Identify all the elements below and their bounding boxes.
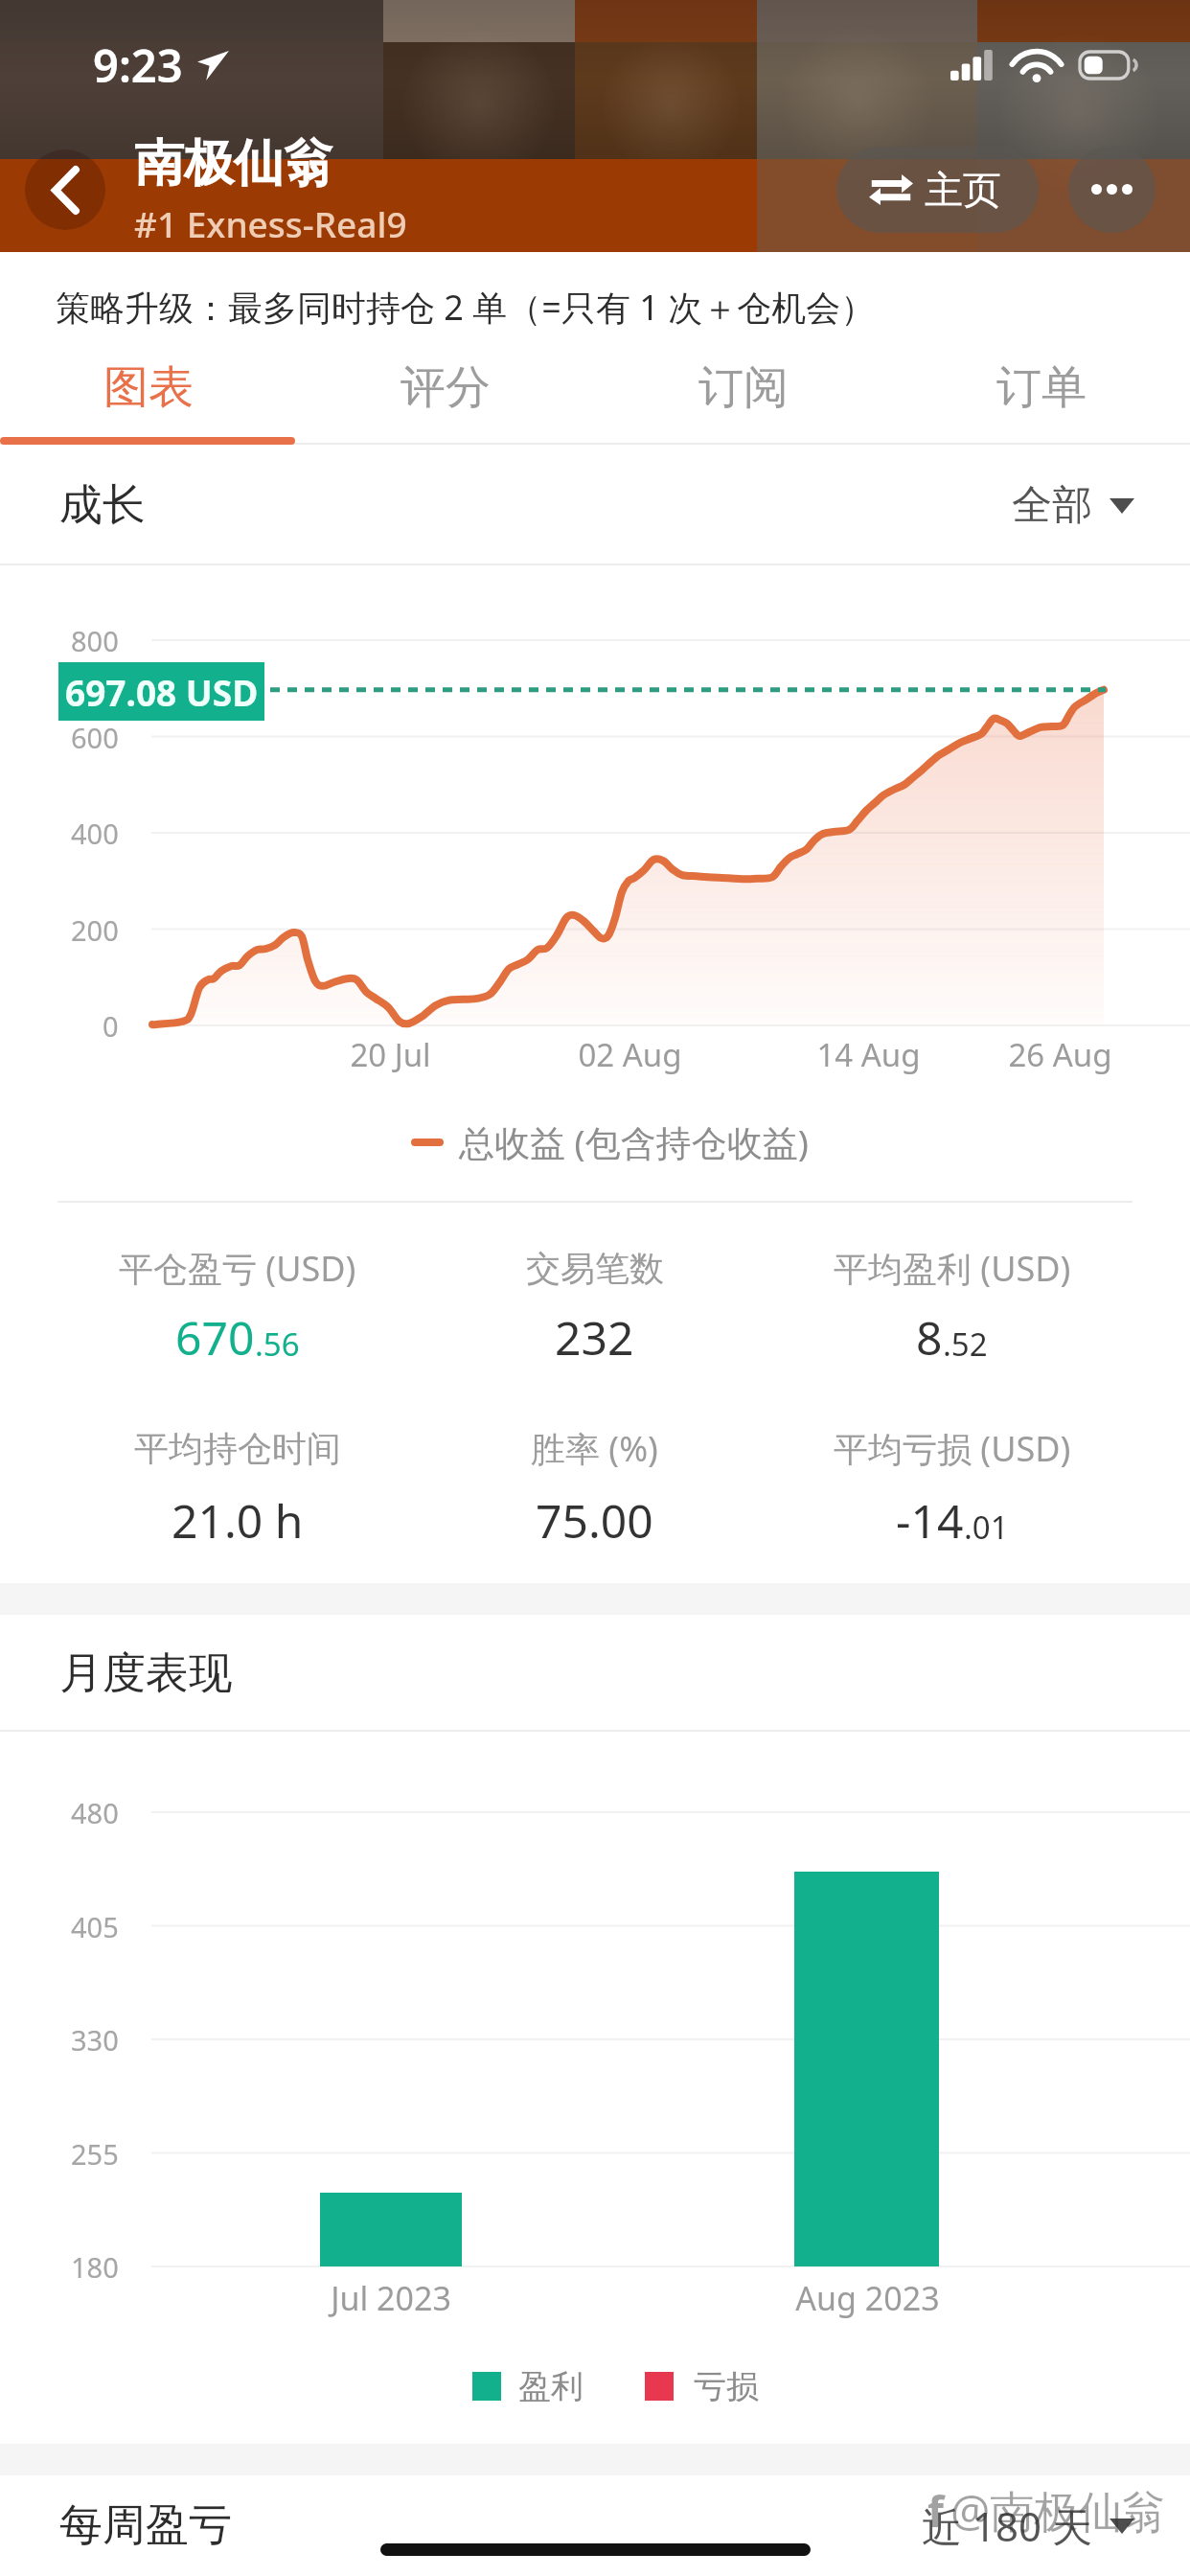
staticText: 平仓盈亏 (USD) bbox=[119, 1245, 356, 1292]
button[interactable]: 图表 bbox=[0, 337, 297, 437]
staticText: 800 bbox=[71, 622, 119, 659]
staticText: 成长 bbox=[59, 478, 146, 533]
staticText: 亏损 bbox=[694, 2366, 759, 2407]
staticText: 400 bbox=[71, 815, 119, 852]
staticText: 每周盈亏 bbox=[59, 2498, 232, 2553]
button[interactable]: 订单 bbox=[892, 337, 1190, 437]
staticText: 180 bbox=[71, 2248, 119, 2286]
staticText: -14 bbox=[896, 1489, 964, 1552]
staticText: 330 bbox=[71, 2021, 119, 2058]
staticText: 近 180 天 bbox=[922, 2498, 1092, 2553]
staticText: .01 bbox=[964, 1506, 1009, 1549]
staticText: 21.0 h bbox=[172, 1489, 304, 1552]
button[interactable]: 全部 bbox=[1012, 465, 1134, 546]
staticText: 评分 bbox=[400, 359, 491, 416]
staticText: 全部 bbox=[1012, 480, 1092, 531]
staticText: 平均盈利 (USD) bbox=[834, 1245, 1071, 1292]
staticText: 胜率 (%) bbox=[531, 1425, 658, 1472]
staticText: Aug 2023 bbox=[795, 2276, 940, 2320]
staticText: 主页 bbox=[925, 166, 1001, 214]
staticText: .52 bbox=[943, 1322, 988, 1366]
staticText: 南极仙翁 bbox=[134, 132, 333, 195]
staticText: @南极仙翁 bbox=[950, 2480, 1167, 2541]
staticText: 平均持仓时间 bbox=[134, 1427, 341, 1470]
staticText: 697.08 USD bbox=[65, 668, 259, 716]
staticText: 平均亏损 (USD) bbox=[834, 1425, 1071, 1472]
staticText: 图表 bbox=[103, 359, 194, 416]
staticText: f bbox=[927, 2482, 945, 2540]
staticText: 670 bbox=[175, 1306, 255, 1368]
staticText: #1 Exness-Real9 bbox=[134, 199, 407, 247]
staticText: 总收益 (包含持仓收益) bbox=[459, 1117, 809, 1166]
button[interactable]: 主页 bbox=[836, 147, 1039, 233]
staticText: 月度表现 bbox=[59, 1646, 232, 1701]
staticText: 订阅 bbox=[698, 359, 789, 416]
staticText: 600 bbox=[71, 719, 119, 756]
staticText: 14 Aug bbox=[816, 1033, 921, 1076]
staticText: 232 bbox=[555, 1306, 634, 1368]
button[interactable]: 近 180 天 bbox=[922, 2483, 1134, 2568]
button[interactable]: More options bbox=[1068, 146, 1156, 233]
staticText: 订单 bbox=[996, 359, 1087, 416]
staticText: 480 bbox=[71, 1794, 119, 1831]
staticText: 策略升级：最多同时持仓 2 单（=只有 1 次＋仓机会） bbox=[56, 284, 876, 331]
staticText: 75.00 bbox=[536, 1489, 653, 1552]
staticText: 200 bbox=[71, 911, 119, 949]
staticText: 0 bbox=[103, 1007, 119, 1045]
button[interactable]: Back bbox=[25, 149, 105, 230]
staticText: Jul 2023 bbox=[331, 2276, 451, 2320]
staticText: 9:23 bbox=[93, 34, 183, 96]
staticText: .56 bbox=[255, 1322, 300, 1366]
staticText: 20 Jul bbox=[350, 1033, 431, 1076]
staticText: 交易笔数 bbox=[526, 1247, 664, 1290]
button[interactable]: 评分 bbox=[297, 337, 594, 437]
staticText: 02 Aug bbox=[578, 1033, 682, 1076]
button[interactable]: 订阅 bbox=[594, 337, 892, 437]
staticText: 8 bbox=[916, 1306, 943, 1368]
staticText: 26 Aug bbox=[1008, 1033, 1112, 1076]
staticText: 405 bbox=[71, 1908, 119, 1945]
staticText: 盈利 bbox=[518, 2366, 584, 2407]
staticText: 255 bbox=[71, 2135, 119, 2173]
